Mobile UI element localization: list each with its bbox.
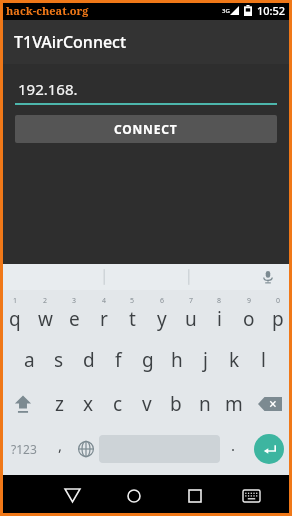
staticText: 2 <box>43 296 48 306</box>
button[interactable]: 192.168. <box>15 79 277 105</box>
button[interactable]: Home <box>103 475 164 516</box>
staticText: 1 <box>13 296 18 306</box>
staticText: 3 <box>72 296 77 306</box>
staticText: 5 <box>130 296 135 306</box>
button[interactable]: CONNECT <box>15 115 277 143</box>
button[interactable]: . <box>220 426 246 472</box>
button[interactable]: 4 <box>89 290 118 338</box>
button[interactable]: d <box>74 338 104 382</box>
staticText: h <box>171 347 183 373</box>
staticText: k <box>229 347 240 373</box>
staticText: 9 <box>247 296 252 306</box>
staticText: hack-cheat.org <box>6 3 89 18</box>
staticText: l <box>261 347 266 373</box>
staticText: j <box>203 347 208 373</box>
staticText: e <box>69 306 80 332</box>
staticText: 192.168. <box>18 79 78 99</box>
staticText: g <box>142 347 154 373</box>
staticText: 4 <box>102 296 107 306</box>
button[interactable]: a <box>14 338 44 382</box>
staticText: 3G <box>222 7 230 15</box>
staticText: 6 <box>160 296 165 306</box>
staticText: 0 <box>276 296 281 306</box>
staticText: r <box>100 306 108 332</box>
button[interactable]: 0 <box>263 290 292 338</box>
button[interactable]: s <box>44 338 74 382</box>
staticText: a <box>24 347 35 373</box>
staticText: o <box>243 306 255 332</box>
button[interactable]: Enter <box>246 426 292 472</box>
button[interactable]: 7 <box>176 290 205 338</box>
button[interactable]: Back <box>42 475 103 516</box>
button[interactable]: Voice input <box>258 267 278 287</box>
staticText: f <box>115 347 122 373</box>
button[interactable]: n <box>190 382 219 426</box>
button[interactable]: Recent apps <box>164 475 225 516</box>
staticText: t <box>129 306 136 332</box>
staticText: 10:52 <box>257 3 286 18</box>
staticText: T1VAirConnect <box>14 31 127 53</box>
staticText: i <box>217 306 222 332</box>
staticText: . <box>231 435 236 455</box>
staticText: 7 <box>189 296 194 306</box>
button[interactable]: 2 <box>30 290 60 338</box>
staticText: y <box>157 306 167 332</box>
staticText: b <box>170 391 182 417</box>
staticText: x <box>83 391 94 417</box>
button[interactable]: m <box>219 382 248 426</box>
button[interactable]: l <box>249 338 278 382</box>
button[interactable]: g <box>133 338 162 382</box>
staticText: 8 <box>217 296 222 306</box>
button[interactable]: 3 <box>60 290 89 338</box>
button[interactable]: ?123 <box>0 426 47 472</box>
button[interactable]: z <box>45 382 74 426</box>
button[interactable]: 5 <box>118 290 147 338</box>
staticText: p <box>272 306 284 332</box>
button[interactable]: 6 <box>147 290 176 338</box>
staticText: u <box>185 306 197 332</box>
staticText: s <box>54 347 64 373</box>
button[interactable]: 9 <box>234 290 263 338</box>
staticText: z <box>55 391 64 417</box>
button[interactable]: Backspace <box>248 382 292 426</box>
button[interactable]: h <box>162 338 191 382</box>
staticText: q <box>9 306 21 332</box>
staticText: , <box>58 435 63 455</box>
button[interactable]: k <box>220 338 249 382</box>
button[interactable]: v <box>132 382 161 426</box>
button[interactable]: x <box>74 382 103 426</box>
button[interactable]: , <box>47 426 73 472</box>
button[interactable]: b <box>161 382 190 426</box>
staticText: v <box>142 391 152 417</box>
staticText: d <box>83 347 95 373</box>
button[interactable]: Switch keyboard <box>225 475 277 516</box>
button[interactable]: f <box>104 338 133 382</box>
staticText: w <box>38 306 53 332</box>
button[interactable]: Shift <box>0 382 45 426</box>
staticText: m <box>225 391 243 417</box>
button[interactable]: Change language <box>73 426 99 472</box>
staticText: CONNECT <box>114 121 178 137</box>
button[interactable]: c <box>103 382 132 426</box>
staticText: c <box>113 391 123 417</box>
staticText: ?123 <box>11 441 37 457</box>
button[interactable]: 8 <box>205 290 234 338</box>
button[interactable]: 1 <box>0 290 30 338</box>
button[interactable]: j <box>191 338 220 382</box>
staticText: n <box>199 391 211 417</box>
